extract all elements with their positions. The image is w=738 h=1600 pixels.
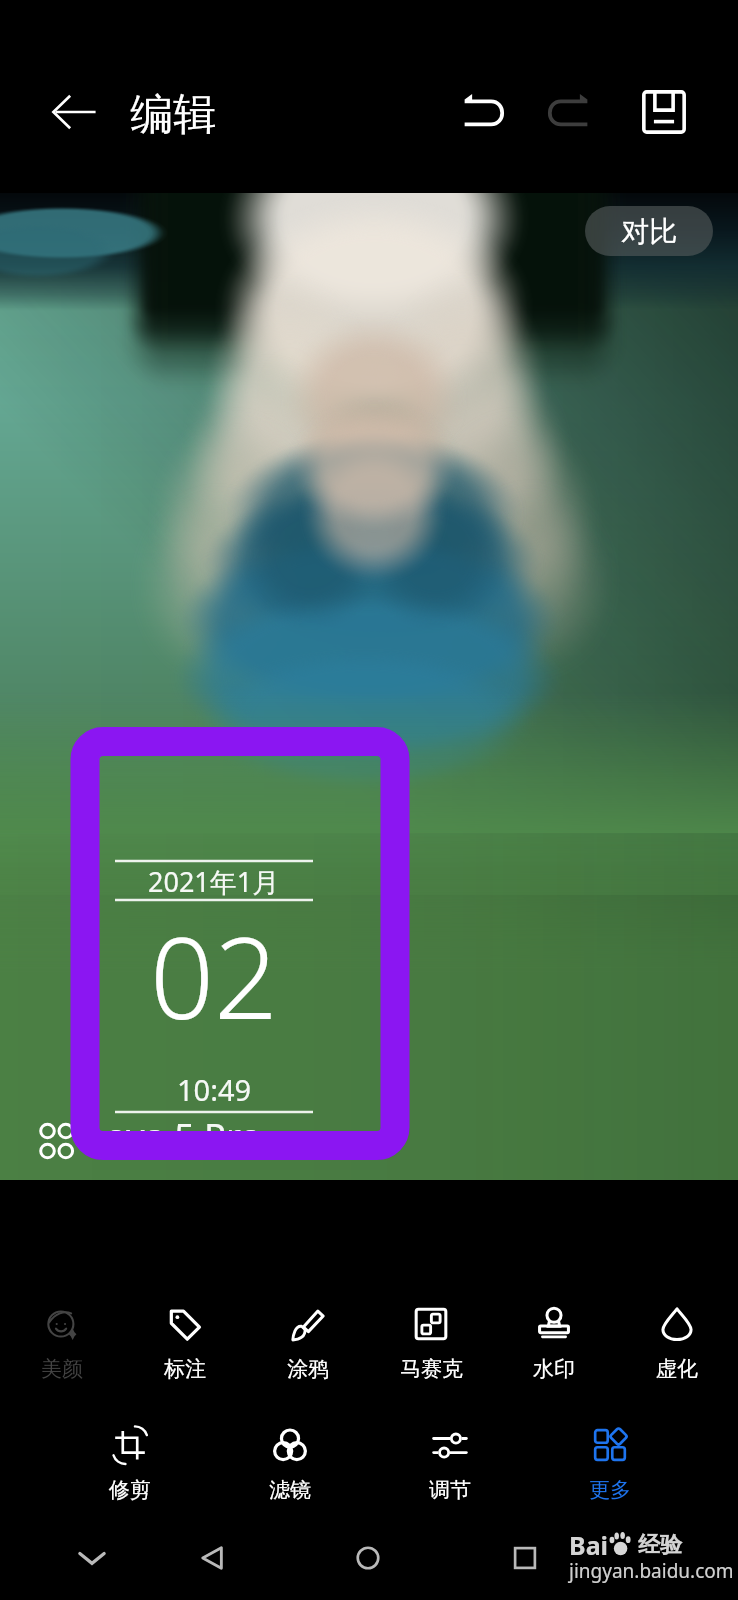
button[interactable]: 标注 bbox=[127, 1297, 243, 1382]
staticText: jingyan.baidu.com bbox=[569, 1558, 734, 1584]
staticText: 马赛克 bbox=[400, 1356, 463, 1382]
button[interactable]: 滤镜 bbox=[232, 1418, 348, 1503]
button[interactable]: 修剪 bbox=[72, 1418, 188, 1503]
staticText: 涂鸦 bbox=[287, 1356, 329, 1382]
staticText: 2021年1月 bbox=[148, 863, 280, 900]
button[interactable]: Home bbox=[330, 1520, 406, 1596]
staticText: 调节 bbox=[429, 1477, 471, 1503]
button[interactable]: 美颜 bbox=[4, 1297, 120, 1382]
staticText: 更多 bbox=[589, 1477, 631, 1503]
button[interactable]: 调节 bbox=[392, 1418, 508, 1503]
button[interactable]: Undo bbox=[432, 60, 536, 164]
staticText: 修剪 bbox=[109, 1477, 151, 1503]
staticText: 虚化 bbox=[656, 1356, 698, 1382]
button[interactable]: 虚化 bbox=[619, 1297, 735, 1382]
button[interactable]: Save bbox=[612, 60, 716, 164]
button[interactable]: 更多 bbox=[552, 1418, 668, 1503]
staticText: 经验 bbox=[638, 1531, 682, 1559]
button[interactable]: 对比 bbox=[585, 206, 713, 256]
staticText: 滤镜 bbox=[269, 1477, 311, 1503]
button[interactable]: 马赛克 bbox=[373, 1297, 489, 1382]
staticText: 10:49 bbox=[177, 1070, 252, 1109]
staticText: Bai bbox=[569, 1528, 609, 1562]
button[interactable]: Back bbox=[175, 1520, 251, 1596]
button[interactable]: 涂鸦 bbox=[250, 1297, 366, 1382]
staticText: 美颜 bbox=[41, 1356, 83, 1382]
button[interactable]: Back bbox=[22, 60, 126, 164]
button[interactable]: 水印 bbox=[496, 1297, 612, 1382]
staticText: 编辑 bbox=[130, 88, 216, 142]
staticText: 02 bbox=[150, 899, 278, 1052]
button[interactable]: Hide keyboard bbox=[54, 1520, 130, 1596]
button[interactable]: Redo bbox=[516, 60, 620, 164]
staticText: 标注 bbox=[164, 1356, 206, 1382]
staticText: nova 5 Pro bbox=[83, 1112, 262, 1161]
staticText: 水印 bbox=[533, 1356, 575, 1382]
button[interactable]: Recents bbox=[487, 1520, 563, 1596]
staticText: 对比 bbox=[621, 214, 677, 249]
